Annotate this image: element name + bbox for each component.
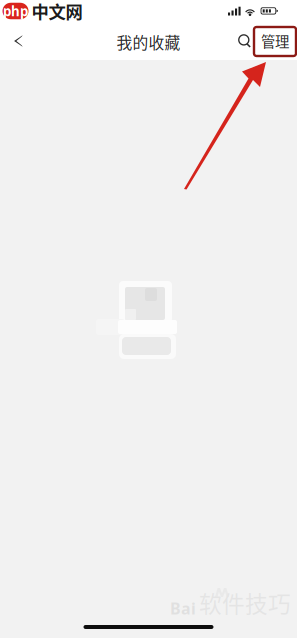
staticText: 中文网: [31, 0, 82, 24]
button[interactable]: Search: [236, 22, 253, 60]
staticText: 管理: [261, 31, 289, 51]
button[interactable]: 管理: [253, 22, 297, 60]
staticText: Bai: [170, 598, 196, 619]
staticText: php: [3, 2, 28, 20]
staticText: 软件技巧: [199, 586, 291, 619]
button[interactable]: Back: [0, 22, 37, 60]
staticText: 我的收藏: [116, 31, 180, 53]
